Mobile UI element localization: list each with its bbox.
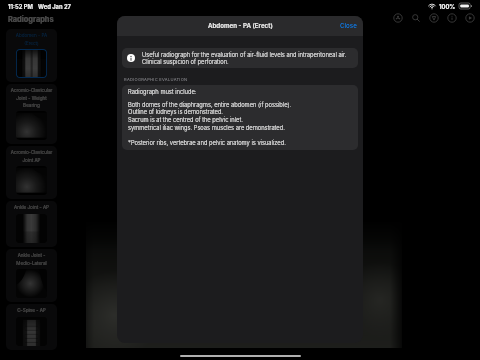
- staticText: Ankle Joint - Medio-Lateral: [10, 253, 53, 266]
- button[interactable]: C-Spine - AP: [6, 304, 57, 350]
- staticText: Both domes of the diaphragms, entire abd…: [128, 101, 292, 131]
- staticText: C-Spine - AP: [17, 308, 46, 314]
- button[interactable]: Search: [411, 13, 421, 23]
- staticText: Useful radiograph for the evaluation of …: [142, 51, 347, 58]
- staticText: Radiographs: [8, 15, 54, 24]
- staticText: Radiograph must include:: [128, 88, 197, 95]
- button[interactable]: Acromio-Clavicular Joint AP: [6, 146, 57, 199]
- button[interactable]: Favourite: [429, 13, 439, 23]
- staticText: Close: [340, 22, 357, 30]
- button[interactable]: Play: [465, 13, 475, 23]
- staticText: Ankle Joint - AP: [14, 205, 49, 211]
- staticText: 11:52 PM: [8, 3, 33, 10]
- button[interactable]: Ankle Joint - AP: [6, 201, 57, 247]
- staticText: Wed Jan 27: [38, 3, 71, 10]
- button[interactable]: Info: [447, 13, 457, 23]
- staticText: *Posterior ribs, vertebrae and pelvic an…: [128, 139, 286, 146]
- staticText: RADIOGRAPHIC EVALUATION: [124, 77, 188, 82]
- button[interactable]: Ankle Joint - Medio-Lateral: [6, 249, 57, 302]
- staticText: Abdomen - PA (Erect): [10, 33, 53, 46]
- staticText: Acromio-Clavicular Joint - Weight Bearin…: [10, 88, 53, 108]
- staticText: Clinical suspicion of perforation.: [142, 58, 229, 65]
- button[interactable]: Abdomen - PA (Erect): [6, 29, 57, 82]
- button[interactable]: Acromio-Clavicular Joint - Weight Bearin…: [6, 84, 57, 144]
- staticText: 100%: [439, 3, 456, 10]
- staticText: Acromio-Clavicular Joint AP: [10, 150, 53, 163]
- button[interactable]: Close: [328, 17, 363, 35]
- button[interactable]: Profile: [393, 13, 403, 23]
- staticText: Abdomen - PA (Erect): [208, 22, 273, 30]
